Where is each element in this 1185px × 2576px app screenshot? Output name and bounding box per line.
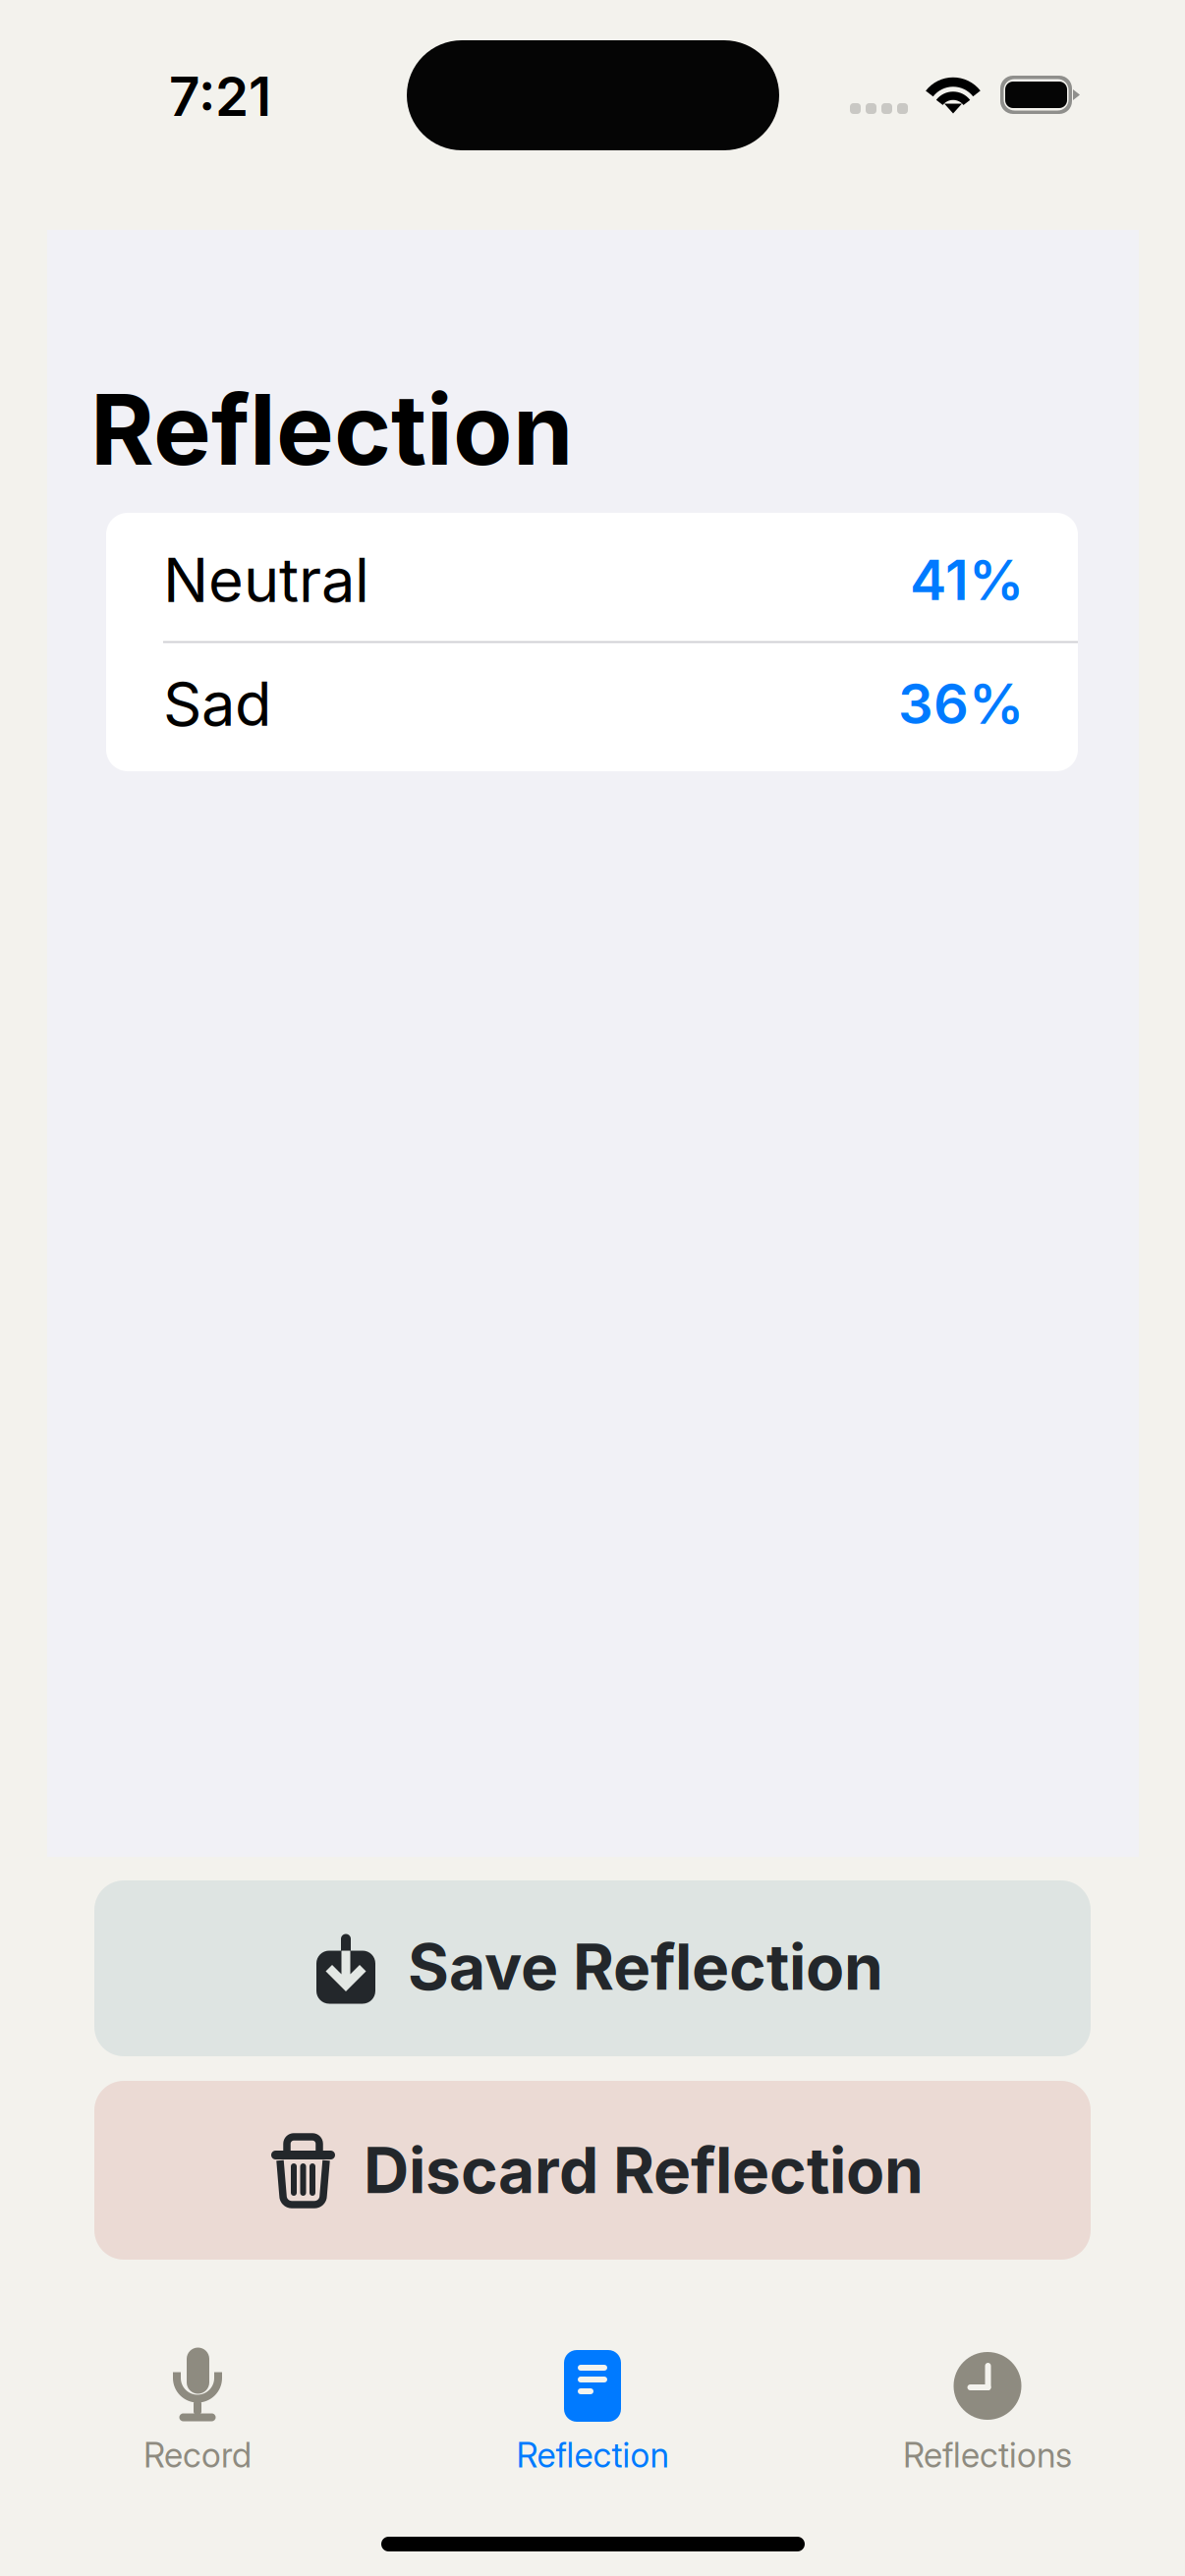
- staticText: Save Reflection: [408, 1929, 883, 2005]
- button[interactable]: Neutral: [106, 519, 1078, 641]
- staticText: Reflections: [903, 2435, 1072, 2476]
- button[interactable]: Reflection: [395, 2348, 790, 2479]
- staticText: Reflection: [516, 2435, 669, 2476]
- staticText: 36%: [898, 671, 1024, 737]
- button[interactable]: Save Reflection: [94, 1880, 1091, 2056]
- button[interactable]: Discard Reflection: [94, 2081, 1091, 2260]
- staticText: Discard Reflection: [364, 2132, 924, 2208]
- staticText: Neutral: [163, 544, 369, 617]
- staticText: Reflection: [90, 371, 573, 488]
- staticText: Record: [143, 2435, 252, 2476]
- staticText: 41%: [910, 547, 1024, 613]
- staticText: 7:21: [169, 64, 271, 129]
- staticText: Sad: [163, 667, 272, 740]
- button[interactable]: Reflections: [790, 2348, 1185, 2479]
- button[interactable]: Sad: [106, 643, 1078, 765]
- button[interactable]: Record: [0, 2348, 395, 2479]
